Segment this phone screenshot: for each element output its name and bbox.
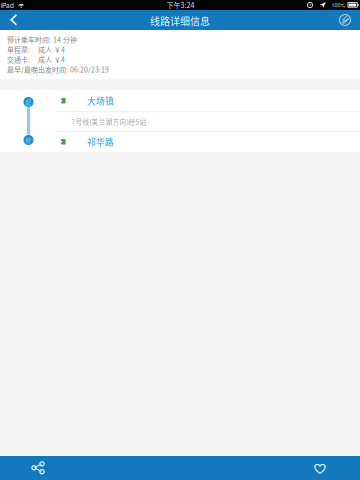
staticText: 7号线(美兰湖方向)经5站 xyxy=(71,117,146,126)
button[interactable]: 7号线(美兰湖方向)经5站 xyxy=(0,112,360,131)
staticText: 大场镇 xyxy=(87,94,114,107)
staticText: 祁华路 xyxy=(87,135,114,148)
button[interactable]: Add to favorites xyxy=(305,456,335,480)
staticText: 线路详细信息 xyxy=(150,14,210,28)
staticText: 单程票: 成人 ￥4 xyxy=(7,44,65,54)
staticText: 预计乘车时间: 14 分钟 xyxy=(7,34,77,44)
button[interactable]: Show route map xyxy=(333,10,357,30)
staticText: 100% xyxy=(331,1,345,9)
button[interactable]: 祁华路 xyxy=(0,132,360,152)
staticText: 下午3:24 xyxy=(166,0,194,10)
button[interactable]: 大场镇 xyxy=(0,90,360,111)
button[interactable]: Back xyxy=(2,10,26,30)
staticText: 终 xyxy=(25,136,31,144)
button[interactable]: Share xyxy=(23,456,53,480)
staticText: 交通卡: 成人 ￥4 xyxy=(7,54,65,64)
staticText: iPad xyxy=(1,0,14,10)
staticText: 最早/最晚出发时间: 06:20/23:19 xyxy=(7,64,109,74)
staticText: 起 xyxy=(25,98,31,106)
